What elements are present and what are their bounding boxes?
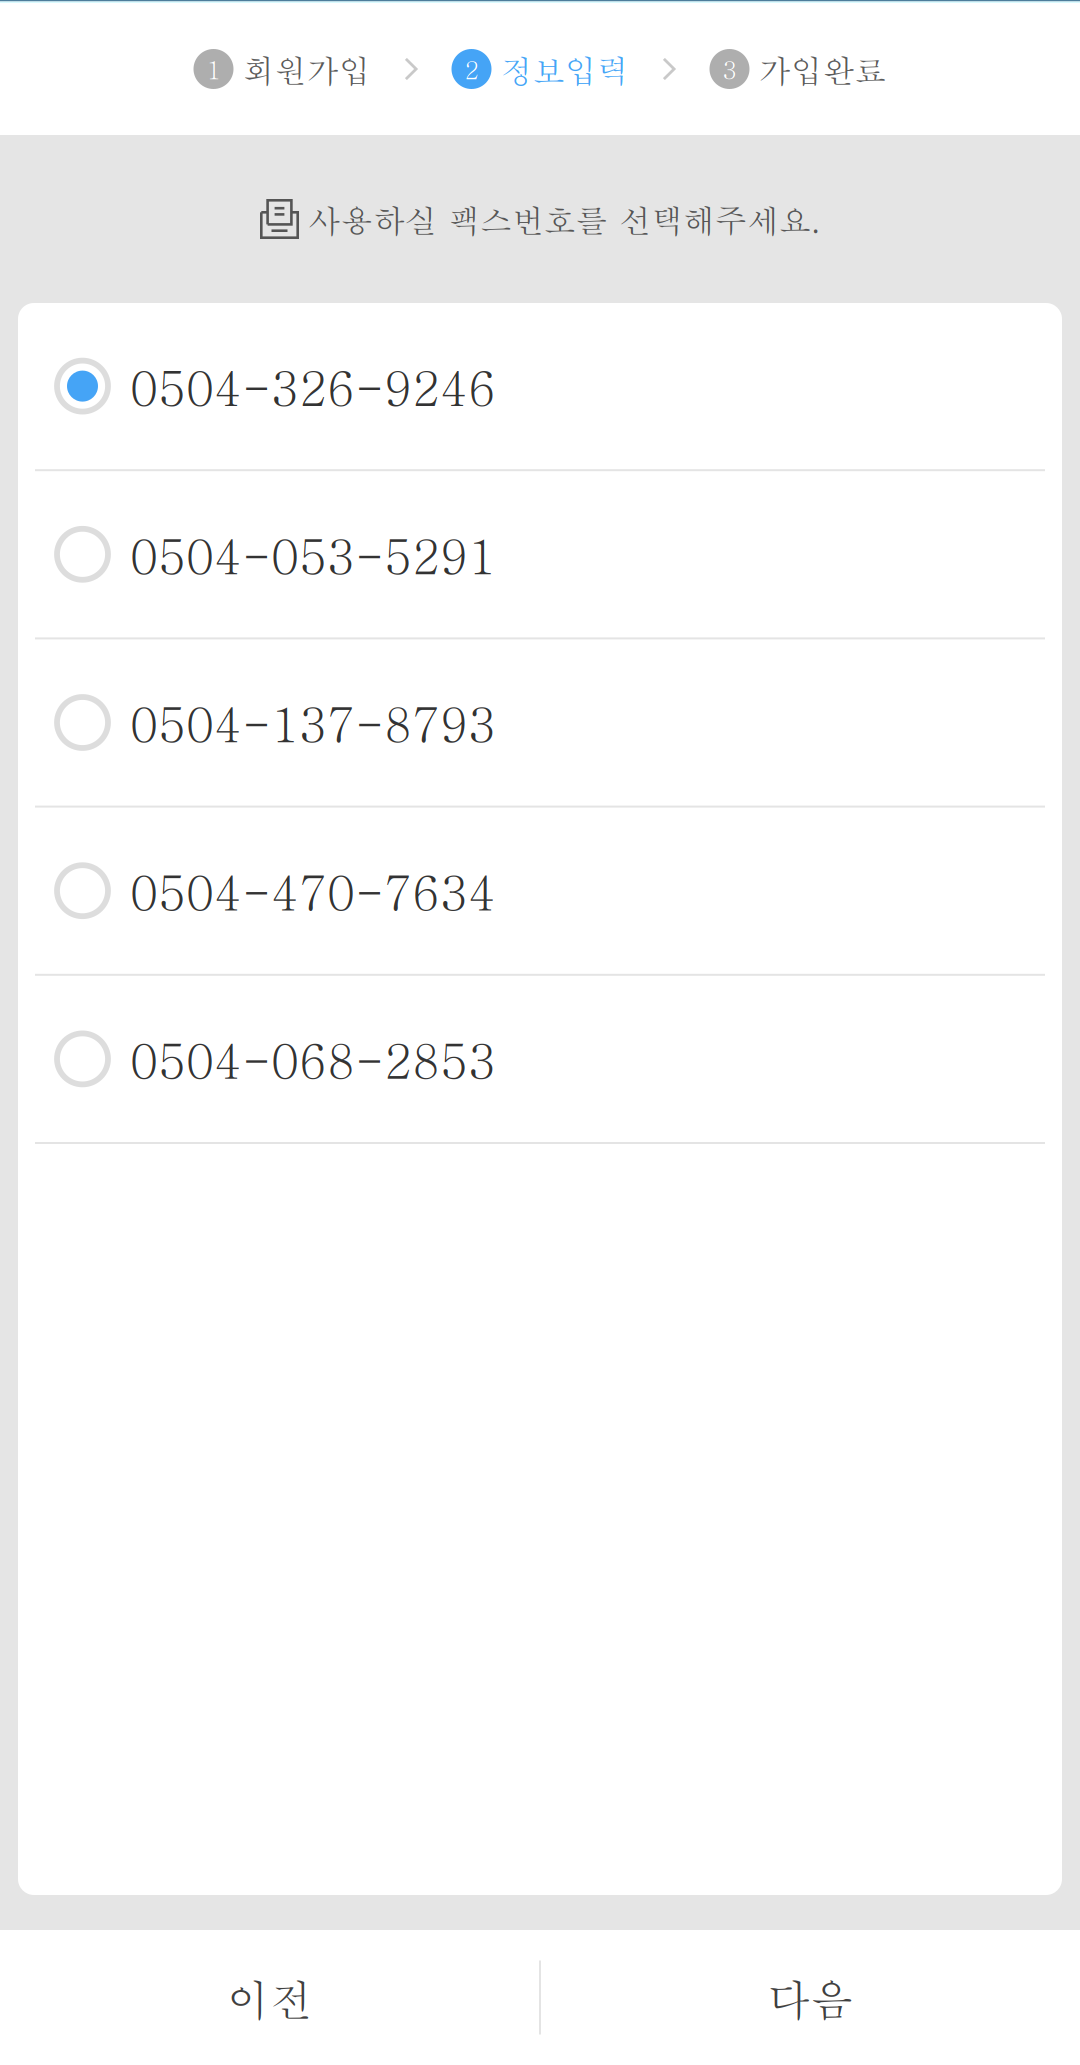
staticText: 0504-137-8793 (130, 689, 496, 755)
staticText: 이전 (226, 1967, 312, 2028)
button[interactable]: 0504-137-8793 (18, 639, 1062, 808)
button[interactable]: 0504-326-9246 (18, 303, 1062, 471)
staticText: 0504-068-2853 (130, 1026, 496, 1092)
button[interactable]: 0504-068-2853 (18, 976, 1062, 1144)
button[interactable]: 0504-053-5291 (18, 471, 1062, 639)
button[interactable]: 1 (193, 46, 370, 92)
button[interactable]: 0504-470-7634 (18, 808, 1062, 976)
staticText: 다음 (767, 1967, 853, 2028)
button[interactable]: 이전 (0, 1930, 539, 2065)
button[interactable]: 다음 (541, 1930, 1080, 2065)
staticText: 회원가입 (242, 46, 370, 92)
staticText: 정보입력 (500, 46, 628, 92)
staticText: 0504-053-5291 (130, 521, 496, 587)
staticText: 가입완료 (758, 46, 886, 92)
staticText: 0504-470-7634 (130, 858, 496, 924)
staticText: 2 (464, 52, 478, 86)
staticText: 0504-326-9246 (130, 353, 496, 419)
button[interactable]: 3 (709, 46, 886, 92)
staticText: 1 (206, 52, 220, 86)
button[interactable]: 2 (451, 46, 628, 92)
staticText: 3 (722, 52, 736, 86)
staticText: 사용하실 팩스번호를 선택해주세요. (309, 196, 820, 242)
